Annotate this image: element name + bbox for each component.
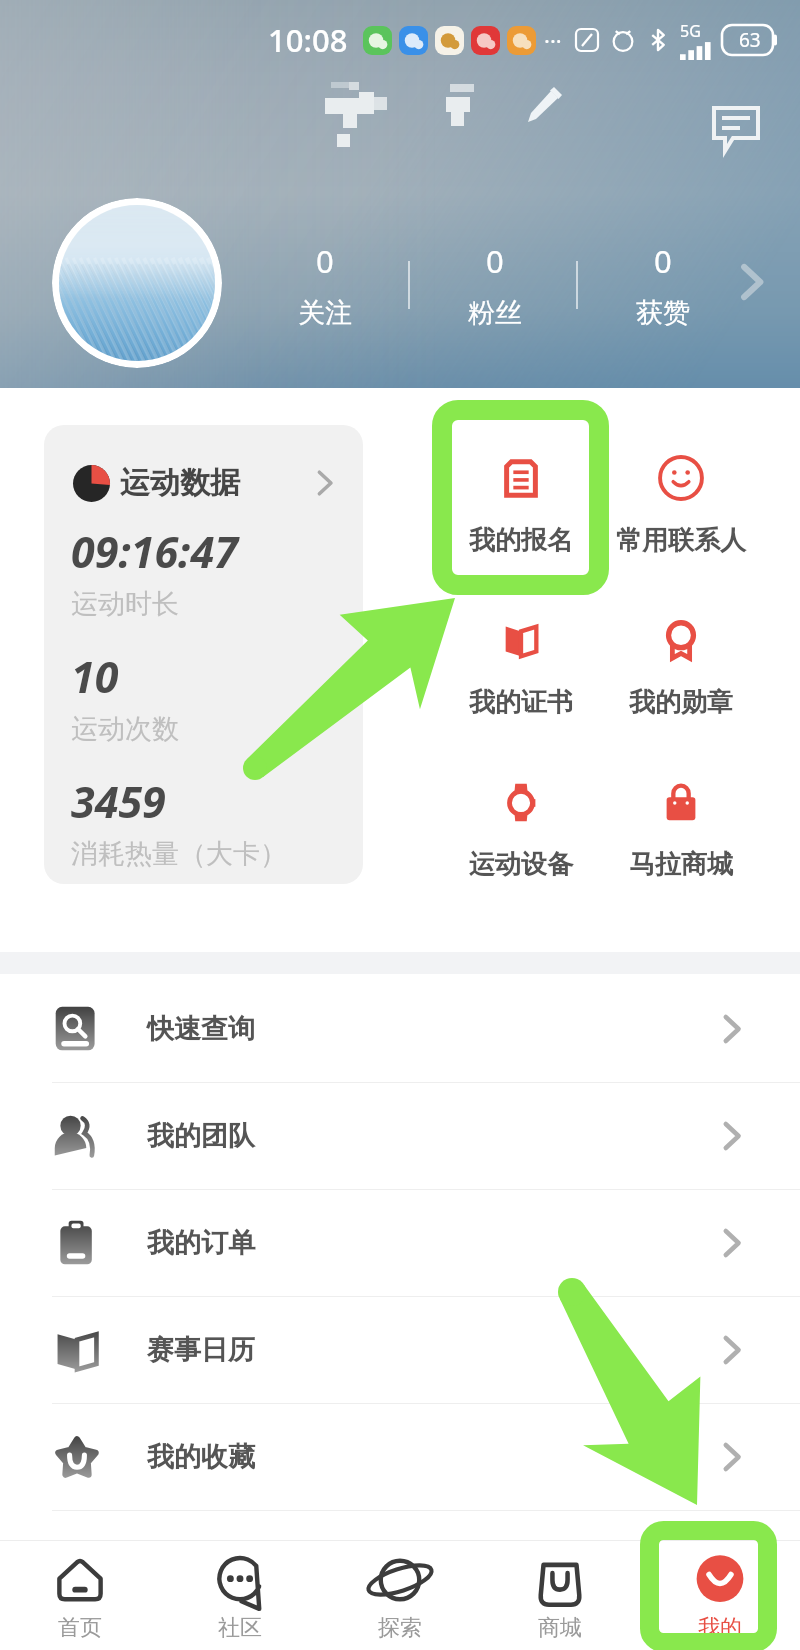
staticText: 商城 [538,1614,582,1642]
staticText: 我的订单 [147,1226,255,1260]
staticText: 10 [71,647,119,706]
button[interactable]: 赛事日历 [0,1297,800,1403]
button[interactable]: 商城 [480,1541,640,1650]
staticText: 0 [486,240,504,282]
button[interactable]: 我的勋章 [596,616,766,726]
button[interactable]: Messages [709,102,763,156]
button[interactable]: 我的团队 [0,1083,800,1189]
button[interactable]: 首页 [0,1541,160,1650]
staticText: 我的勋章 [629,686,733,719]
button[interactable]: 社区 [160,1541,320,1650]
button[interactable]: Profile avatar [52,198,222,368]
button[interactable]: 快速查询 [0,976,800,1082]
button[interactable]: 我的订单 [0,1190,800,1296]
staticText: 我的团队 [147,1119,255,1153]
staticText: 探索 [378,1614,422,1642]
staticText: 63 [739,27,761,53]
button[interactable]: Edit profile [518,78,570,130]
staticText: 运动数据 [120,464,240,502]
staticText: 快速查询 [147,1012,255,1046]
staticText: 10:08 [268,19,348,61]
staticText: 关注 [298,296,352,330]
staticText: 0 [654,240,672,282]
staticText: 运动次数 [71,712,179,746]
staticText: 09:16:47 [71,522,238,581]
staticText: 运动设备 [469,848,573,881]
button[interactable]: 我的证书 [436,616,606,726]
staticText: 常用联系人 [616,524,746,557]
staticText: 我的证书 [469,686,573,719]
button[interactable]: 0 [245,225,790,345]
button[interactable]: 运动设备 [436,778,606,888]
staticText: 我的报名 [469,524,573,557]
staticText: 0 [316,240,334,282]
staticText: 3459 [71,772,166,831]
staticText: 我的收藏 [147,1440,255,1474]
button[interactable]: 探索 [320,1541,480,1650]
staticText: 社区 [218,1614,262,1642]
button[interactable]: 设置 [0,1511,800,1617]
staticText: 5G [680,20,701,42]
button[interactable]: 常用联系人 [596,454,766,564]
button[interactable]: 我的收藏 [0,1404,800,1510]
button[interactable]: 我的报名 [436,454,606,564]
button[interactable]: 运动数据 [44,425,363,884]
staticText: 粉丝 [468,296,522,330]
staticText: 获赞 [636,296,690,330]
staticText: 运动时长 [71,587,179,621]
staticText: 消耗热量（大卡） [71,837,287,871]
staticText: ··· [544,25,562,55]
button[interactable]: 马拉商城 [596,778,766,888]
staticText: 赛事日历 [147,1333,255,1367]
button[interactable]: 我的 [640,1541,800,1650]
staticText: 马拉商城 [629,848,733,881]
staticText: 首页 [58,1614,102,1642]
staticText: 我的 [698,1614,742,1642]
